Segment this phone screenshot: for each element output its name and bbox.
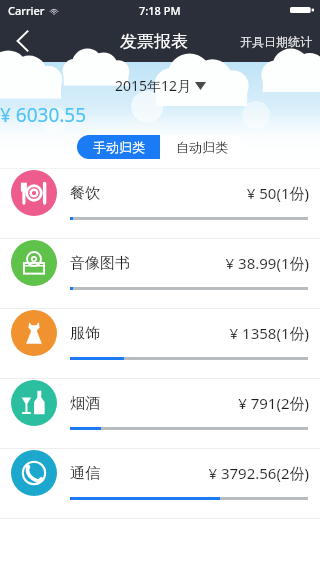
button[interactable]: Back <box>0 20 46 62</box>
staticText: ¥ 791(2份) <box>238 393 309 413</box>
staticText: 发票报表 <box>120 31 188 52</box>
staticText: 通信 <box>70 464 100 483</box>
button[interactable]: 餐饮 <box>0 169 320 239</box>
button[interactable]: 音像图书 <box>0 239 320 309</box>
staticText: 开具日期统计 <box>240 34 312 49</box>
staticText: 手动归类 <box>93 139 145 155</box>
staticText: ¥ 1358(1份) <box>229 323 309 343</box>
button[interactable]: 服饰 <box>0 309 320 379</box>
staticText: 自动归类 <box>176 139 228 155</box>
button[interactable]: 自动归类 <box>160 135 243 159</box>
staticText: ¥ 50(1份) <box>246 183 309 203</box>
staticText: 烟酒 <box>70 394 100 413</box>
staticText: 服饰 <box>70 324 100 343</box>
staticText: 餐饮 <box>70 184 100 203</box>
button[interactable]: 通信 <box>0 449 320 519</box>
staticText: 7:18 PM <box>139 3 181 18</box>
button[interactable]: 2015年12月 <box>109 74 212 97</box>
staticText: ¥ 3792.56(2份) <box>208 463 309 483</box>
button[interactable]: 开具日期统计 <box>232 20 320 62</box>
staticText: Carrier <box>8 3 45 18</box>
staticText: ¥ 6030.55 <box>0 102 320 128</box>
staticText: ¥ 38.99(1份) <box>225 253 309 273</box>
staticText: 2015年12月 <box>115 76 192 95</box>
button[interactable]: 烟酒 <box>0 379 320 449</box>
button[interactable]: 手动归类 <box>77 135 160 159</box>
staticText: 音像图书 <box>70 254 130 273</box>
